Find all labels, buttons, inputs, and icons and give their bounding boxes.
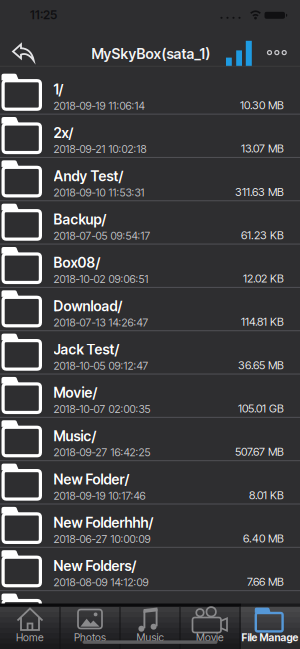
staticText: 114.81 KB xyxy=(241,315,284,329)
staticText: Music xyxy=(136,631,163,644)
button[interactable]: Photos xyxy=(60,603,120,649)
button[interactable]: Music/ xyxy=(0,418,300,461)
staticText: 2x/ xyxy=(53,124,73,141)
staticText: 2018-09-19 11:06:14 xyxy=(53,99,144,112)
staticText: 2018-08-09 14:12:09 xyxy=(53,576,148,589)
staticText: 2018-10-05 09:12:47 xyxy=(53,359,148,372)
staticText: 2018-09-27 16:42:25 xyxy=(53,446,150,459)
button[interactable] xyxy=(0,591,300,634)
staticText: 6.40 MB xyxy=(243,532,284,545)
staticText: 2018-07-13 14:26:47 xyxy=(53,316,148,329)
button[interactable]: Backup/ xyxy=(0,201,300,245)
staticText: 311.63 MB xyxy=(235,185,284,199)
staticText: New Folders/ xyxy=(53,558,136,574)
button[interactable]: New Folder/ xyxy=(0,461,300,504)
button[interactable]: New Folderhhh/ xyxy=(0,504,300,548)
staticText: 2018-10-02 09:06:51 xyxy=(53,273,148,286)
button[interactable]: 1/ xyxy=(0,71,300,115)
button[interactable]: File Manage xyxy=(240,603,300,649)
button[interactable]: Download/ xyxy=(0,288,300,331)
button[interactable]: Music xyxy=(120,603,180,649)
staticText: 2018-07-05 09:54:17 xyxy=(53,229,150,242)
staticText: 61.23 KB xyxy=(241,228,284,242)
staticText: Movie/ xyxy=(53,384,97,401)
staticText: Download/ xyxy=(53,298,122,314)
button[interactable]: Movie/ xyxy=(0,374,300,418)
button[interactable]: Andy Test/ xyxy=(0,158,300,201)
staticText: 2018-06-27 10:00:09 xyxy=(53,533,150,545)
staticText: Backup/ xyxy=(53,211,106,228)
button[interactable]: Box08/ xyxy=(0,245,300,288)
staticText: 8.01 KB xyxy=(249,488,284,502)
button[interactable]: Movie xyxy=(180,603,240,649)
staticText: 507.67 MB xyxy=(235,445,284,459)
staticText: File Manage xyxy=(241,631,298,644)
staticText: 11:25 xyxy=(30,7,57,22)
staticText: 12.02 KB xyxy=(243,272,284,285)
staticText: Jack Test/ xyxy=(53,341,119,358)
staticText: Photos xyxy=(74,631,106,644)
staticText: 2018-10-07 02:00:35 xyxy=(53,403,150,416)
staticText: New Folderhhh/ xyxy=(53,514,153,531)
button[interactable]: Jack Test/ xyxy=(0,331,300,374)
staticText: Andy Test/ xyxy=(53,168,123,185)
staticText: Music/ xyxy=(53,428,96,444)
staticText: 1/ xyxy=(53,81,63,98)
staticText: Home xyxy=(16,631,44,644)
staticText: 10.30 MB xyxy=(240,98,284,112)
staticText: 13.07 MB xyxy=(241,142,284,155)
staticText: 7.66 MB xyxy=(247,575,284,588)
staticText: 105.01 GB xyxy=(238,402,284,415)
button[interactable]: Home xyxy=(0,603,60,649)
button[interactable]: 2x/ xyxy=(0,115,300,158)
staticText: Movie xyxy=(196,631,224,644)
button[interactable]: Back xyxy=(0,35,44,70)
staticText: New Folder/ xyxy=(53,471,129,488)
staticText: 36.65 MB xyxy=(238,358,284,372)
staticText: 2018-09-19 10:17:46 xyxy=(53,489,145,502)
staticText: 2018-09-21 10:02:18 xyxy=(53,143,146,156)
button[interactable]: New Folders/ xyxy=(0,548,300,591)
staticText: MySkyBox(sata_1) xyxy=(91,45,210,62)
button[interactable]: Storage usage xyxy=(222,35,256,70)
button[interactable]: More xyxy=(264,35,289,70)
staticText: Box08/ xyxy=(53,254,100,271)
staticText: 2018-09-10 11:53:31 xyxy=(53,186,144,199)
